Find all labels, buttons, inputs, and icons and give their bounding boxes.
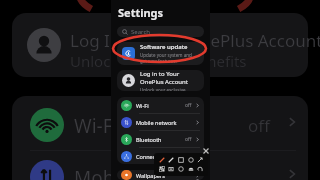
button[interactable]: Log in to Your OnePlus Account (117, 70, 204, 91)
staticText: Log In to Your OnePlus Account (70, 29, 320, 52)
staticText: Wi-Fi (136, 102, 185, 109)
button[interactable]: Mobile network (117, 114, 204, 130)
button[interactable]: Ellipse (187, 156, 195, 164)
button[interactable]: Software update (117, 42, 204, 65)
staticText: off (248, 114, 270, 137)
button[interactable]: Eraser (177, 165, 185, 173)
button[interactable]: Bluetooth (117, 131, 204, 147)
staticText: Bluetooth (136, 136, 185, 143)
button[interactable]: Undo (196, 165, 204, 173)
staticText: Software update (140, 43, 188, 51)
button[interactable]: Crop (167, 165, 175, 173)
button[interactable]: Wi-Fi (117, 97, 204, 113)
button[interactable]: Arrow (196, 156, 204, 164)
button[interactable]: Save (187, 165, 195, 173)
staticText: Search (131, 28, 150, 36)
staticText: off (185, 102, 192, 109)
staticText: Wi-Fi (74, 113, 118, 139)
staticText: off (185, 136, 192, 143)
staticText: Log in to Your OnePlus Account (140, 70, 199, 86)
staticText: Unlock exclusive benefits (70, 51, 247, 71)
staticText: Unlock your exclusive benefits (140, 87, 199, 91)
staticText: Update your system and get new features. (140, 52, 199, 64)
button[interactable]: Connection & sharing (117, 148, 204, 164)
button[interactable]: Mosaic (158, 165, 166, 173)
button[interactable]: Highlighter (167, 156, 175, 164)
button[interactable]: Close toolbar (201, 146, 211, 156)
staticText: Wallpapers (136, 172, 195, 179)
staticText: Connection & sharing (136, 153, 195, 160)
button[interactable]: Search (117, 26, 204, 37)
button[interactable]: Pen (158, 156, 166, 164)
staticText: Settings (118, 5, 164, 20)
staticText: Mobile (74, 165, 135, 180)
button[interactable]: Wallpapers (117, 170, 204, 180)
staticText: Mobile network (136, 119, 195, 126)
button[interactable]: Rectangle (177, 156, 185, 164)
